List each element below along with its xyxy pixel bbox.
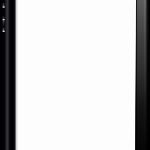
- button[interactable]: Side buttons: [0, 0, 15, 150]
- button[interactable]: Device edge: [135, 0, 150, 150]
